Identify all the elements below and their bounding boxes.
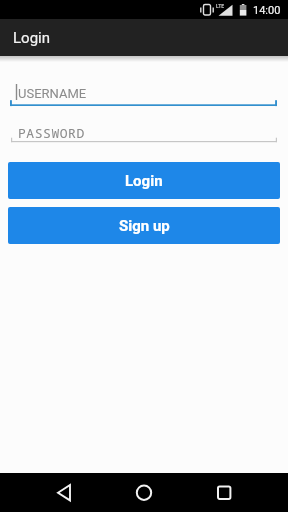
button[interactable]: PASSWORD <box>8 115 280 144</box>
staticText: Login <box>13 29 50 47</box>
button[interactable]: Sign up <box>8 207 280 244</box>
button[interactable] <box>48 473 80 512</box>
button[interactable]: USERNAME <box>8 78 280 107</box>
staticText: USERNAME <box>18 86 87 101</box>
staticText: Sign up <box>119 217 170 235</box>
button[interactable] <box>128 473 160 512</box>
staticText: LTE <box>216 3 225 9</box>
button[interactable]: Login <box>0 19 288 56</box>
staticText: PASSWORD <box>18 124 85 142</box>
button[interactable]: Login <box>8 162 280 199</box>
button[interactable] <box>208 473 240 512</box>
staticText: Login <box>125 172 163 190</box>
staticText: 14:00 <box>253 4 281 17</box>
